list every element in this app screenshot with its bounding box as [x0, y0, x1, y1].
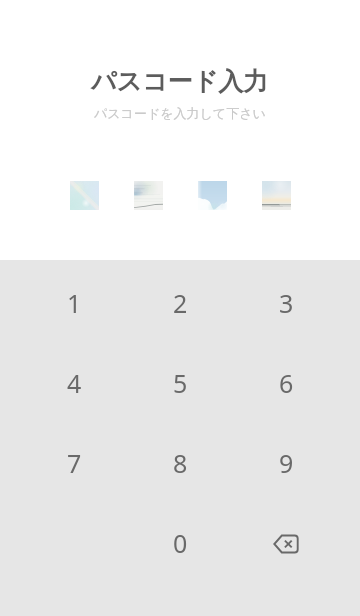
staticText: 9 — [279, 446, 294, 480]
button[interactable]: Photo 3 — [198, 181, 227, 210]
staticText: 8 — [173, 446, 188, 480]
button[interactable]: 4 — [34, 353, 114, 413]
staticText: 6 — [279, 366, 294, 400]
button[interactable]: 7 — [34, 433, 114, 493]
button[interactable]: Photo 4 — [262, 181, 291, 210]
staticText: 3 — [279, 286, 294, 320]
button[interactable]: Backspace — [246, 513, 326, 573]
button[interactable]: Photo 1 — [70, 181, 99, 210]
button[interactable]: 6 — [246, 353, 326, 413]
button[interactable]: 1 — [34, 273, 114, 333]
button[interactable]: Photo 2 — [134, 181, 163, 210]
staticText: 7 — [67, 446, 82, 480]
staticText: 0 — [173, 526, 188, 560]
staticText: パスコードを入力して下さい — [94, 105, 266, 121]
button[interactable]: 3 — [246, 273, 326, 333]
button[interactable]: 5 — [140, 353, 220, 413]
button[interactable]: 2 — [140, 273, 220, 333]
staticText: 5 — [173, 366, 188, 400]
button[interactable]: 8 — [140, 433, 220, 493]
other: Backspace — [272, 532, 300, 554]
button[interactable]: 0 — [140, 513, 220, 573]
staticText: パスコード入力 — [91, 66, 269, 97]
staticText: 2 — [173, 286, 188, 320]
button[interactable]: 9 — [246, 433, 326, 493]
staticText: 1 — [67, 286, 82, 320]
staticText: 4 — [67, 366, 82, 400]
